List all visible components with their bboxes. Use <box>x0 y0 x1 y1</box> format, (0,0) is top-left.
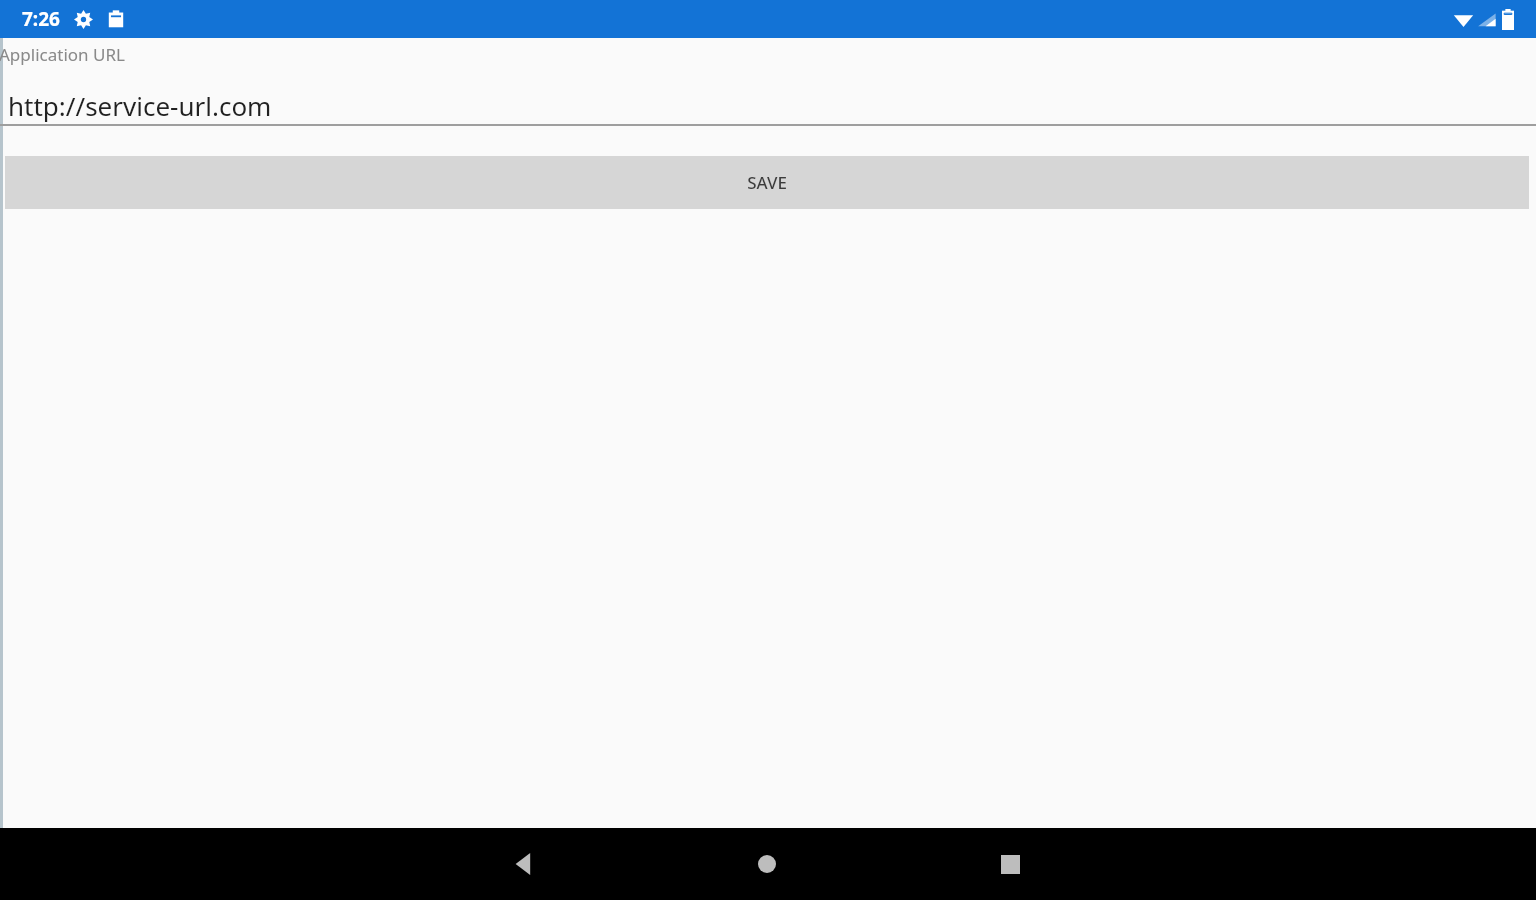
button[interactable]: Recent apps <box>974 828 1046 900</box>
button[interactable]: SAVE <box>5 156 1529 209</box>
button[interactable]: http://service-url.com <box>0 86 1536 126</box>
staticText: SAVE <box>747 171 787 194</box>
button[interactable]: Home <box>731 828 803 900</box>
staticText: 7:26 <box>22 6 60 32</box>
staticText: Application URL <box>0 43 125 66</box>
button[interactable]: Back <box>488 828 560 900</box>
staticText: http://service-url.com <box>8 88 272 123</box>
